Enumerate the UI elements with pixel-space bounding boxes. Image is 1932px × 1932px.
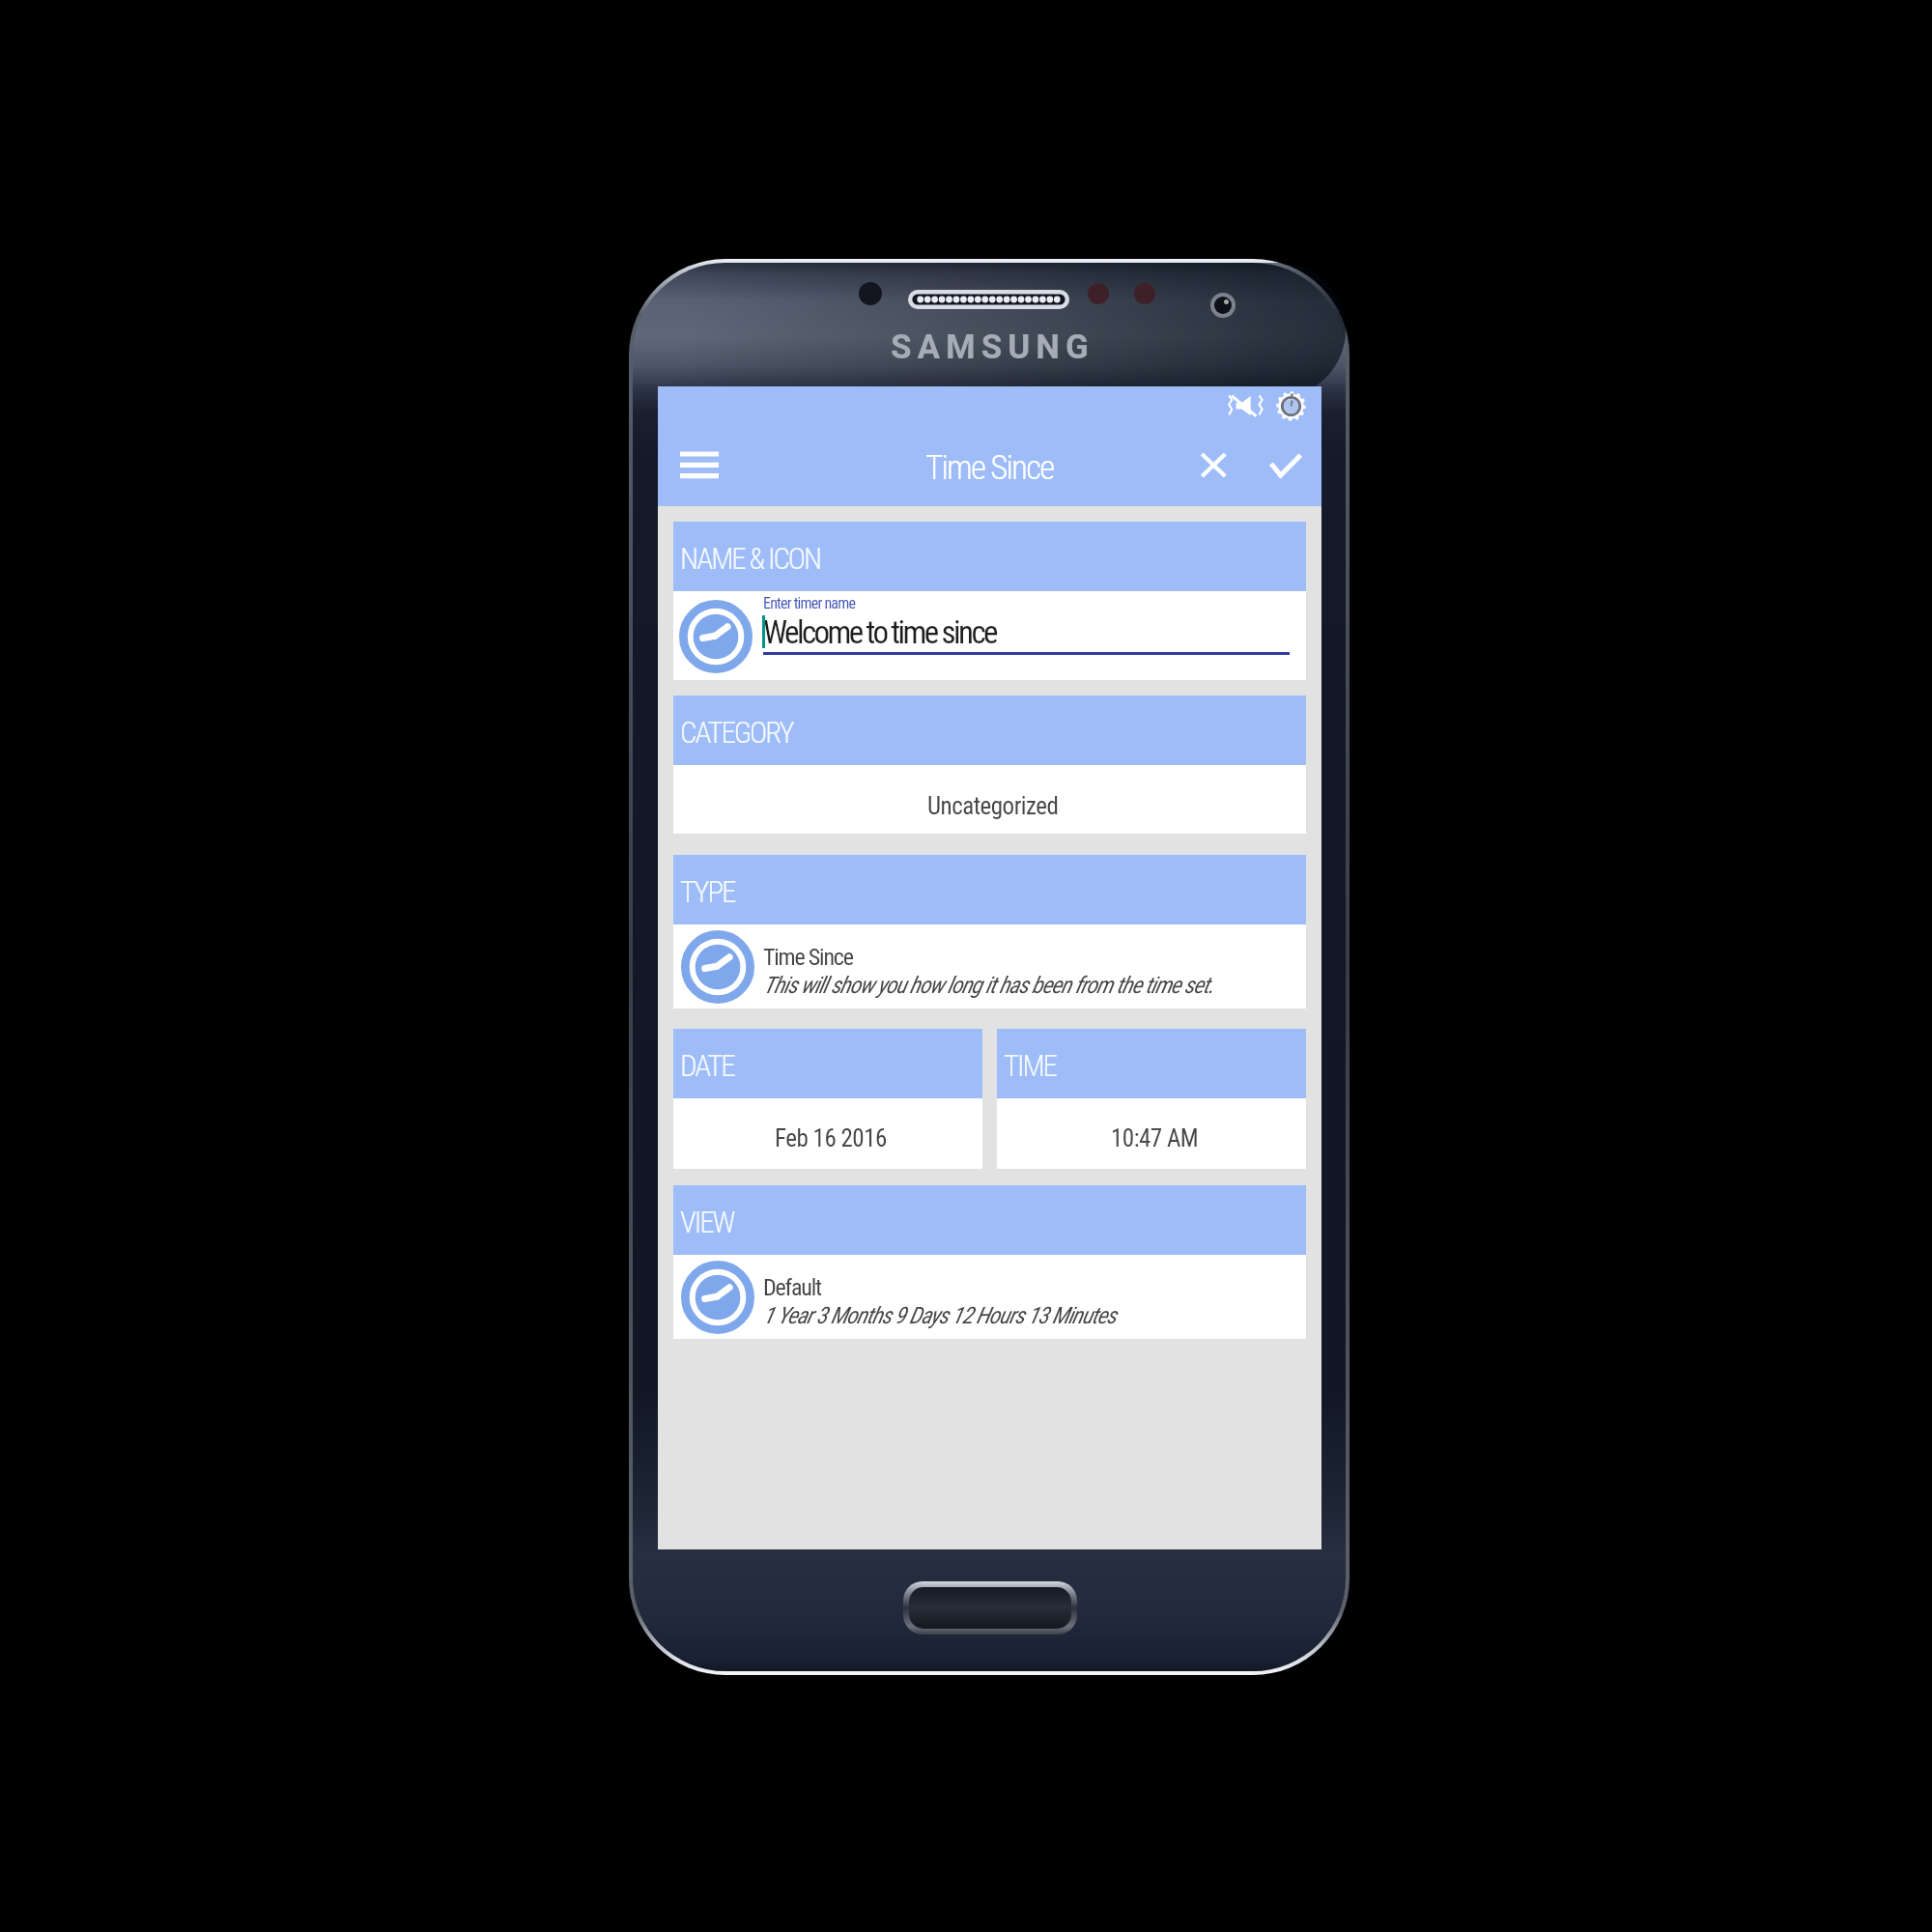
staticText: Enter timer name bbox=[763, 594, 856, 612]
staticText: TYPE bbox=[680, 874, 735, 909]
staticText: DATE bbox=[680, 1048, 734, 1083]
staticText: Default bbox=[763, 1274, 821, 1301]
button[interactable]: Enter timer name bbox=[673, 591, 1306, 680]
staticText: Uncategorized bbox=[927, 792, 1059, 820]
button[interactable]: Menu bbox=[664, 433, 735, 502]
button[interactable]: Default bbox=[673, 1255, 1306, 1339]
staticText: 1 Year 3 Months 9 Days 12 Hours 13 Minut… bbox=[763, 1302, 1116, 1329]
staticText: CATEGORY bbox=[680, 715, 793, 750]
staticText: Feb 16 2016 bbox=[775, 1124, 887, 1152]
staticText: TIME bbox=[1004, 1048, 1056, 1083]
staticText: SAMSUNG bbox=[891, 327, 1094, 360]
staticText: 10:47 AM bbox=[1111, 1124, 1199, 1152]
button[interactable]: Save bbox=[1249, 430, 1321, 499]
staticText: Welcome to time since bbox=[763, 613, 996, 651]
button[interactable]: 10:47 AM bbox=[997, 1098, 1306, 1169]
staticText: Time Since bbox=[925, 448, 1054, 488]
staticText: Time Since bbox=[763, 944, 853, 971]
staticText: NAME & ICON bbox=[680, 541, 821, 576]
button[interactable]: Cancel bbox=[1179, 430, 1249, 499]
button[interactable]: Time Since bbox=[673, 924, 1306, 1009]
button[interactable]: Feb 16 2016 bbox=[673, 1098, 982, 1169]
staticText: VIEW bbox=[680, 1205, 734, 1239]
other: Timer running bbox=[1276, 391, 1306, 421]
other: Sound off, vibrate bbox=[1229, 394, 1264, 417]
button[interactable]: Uncategorized bbox=[673, 765, 1306, 834]
staticText: This will show you how long it has been … bbox=[763, 972, 1213, 999]
